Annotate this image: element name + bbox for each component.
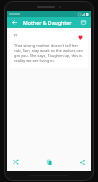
button[interactable]: Copy — [44, 157, 54, 167]
button[interactable]: Favourite — [77, 34, 84, 41]
button[interactable]: Share — [77, 157, 87, 167]
staticText: That strong mother doesn't tell her cub,… — [14, 43, 84, 63]
button[interactable]: Saved quotes — [79, 18, 88, 27]
button[interactable]: Back — [10, 18, 19, 27]
button[interactable]: Shuffle — [11, 157, 21, 167]
button[interactable]: Favourite — [10, 31, 88, 68]
staticText: Mother & Daughter — [23, 19, 79, 26]
